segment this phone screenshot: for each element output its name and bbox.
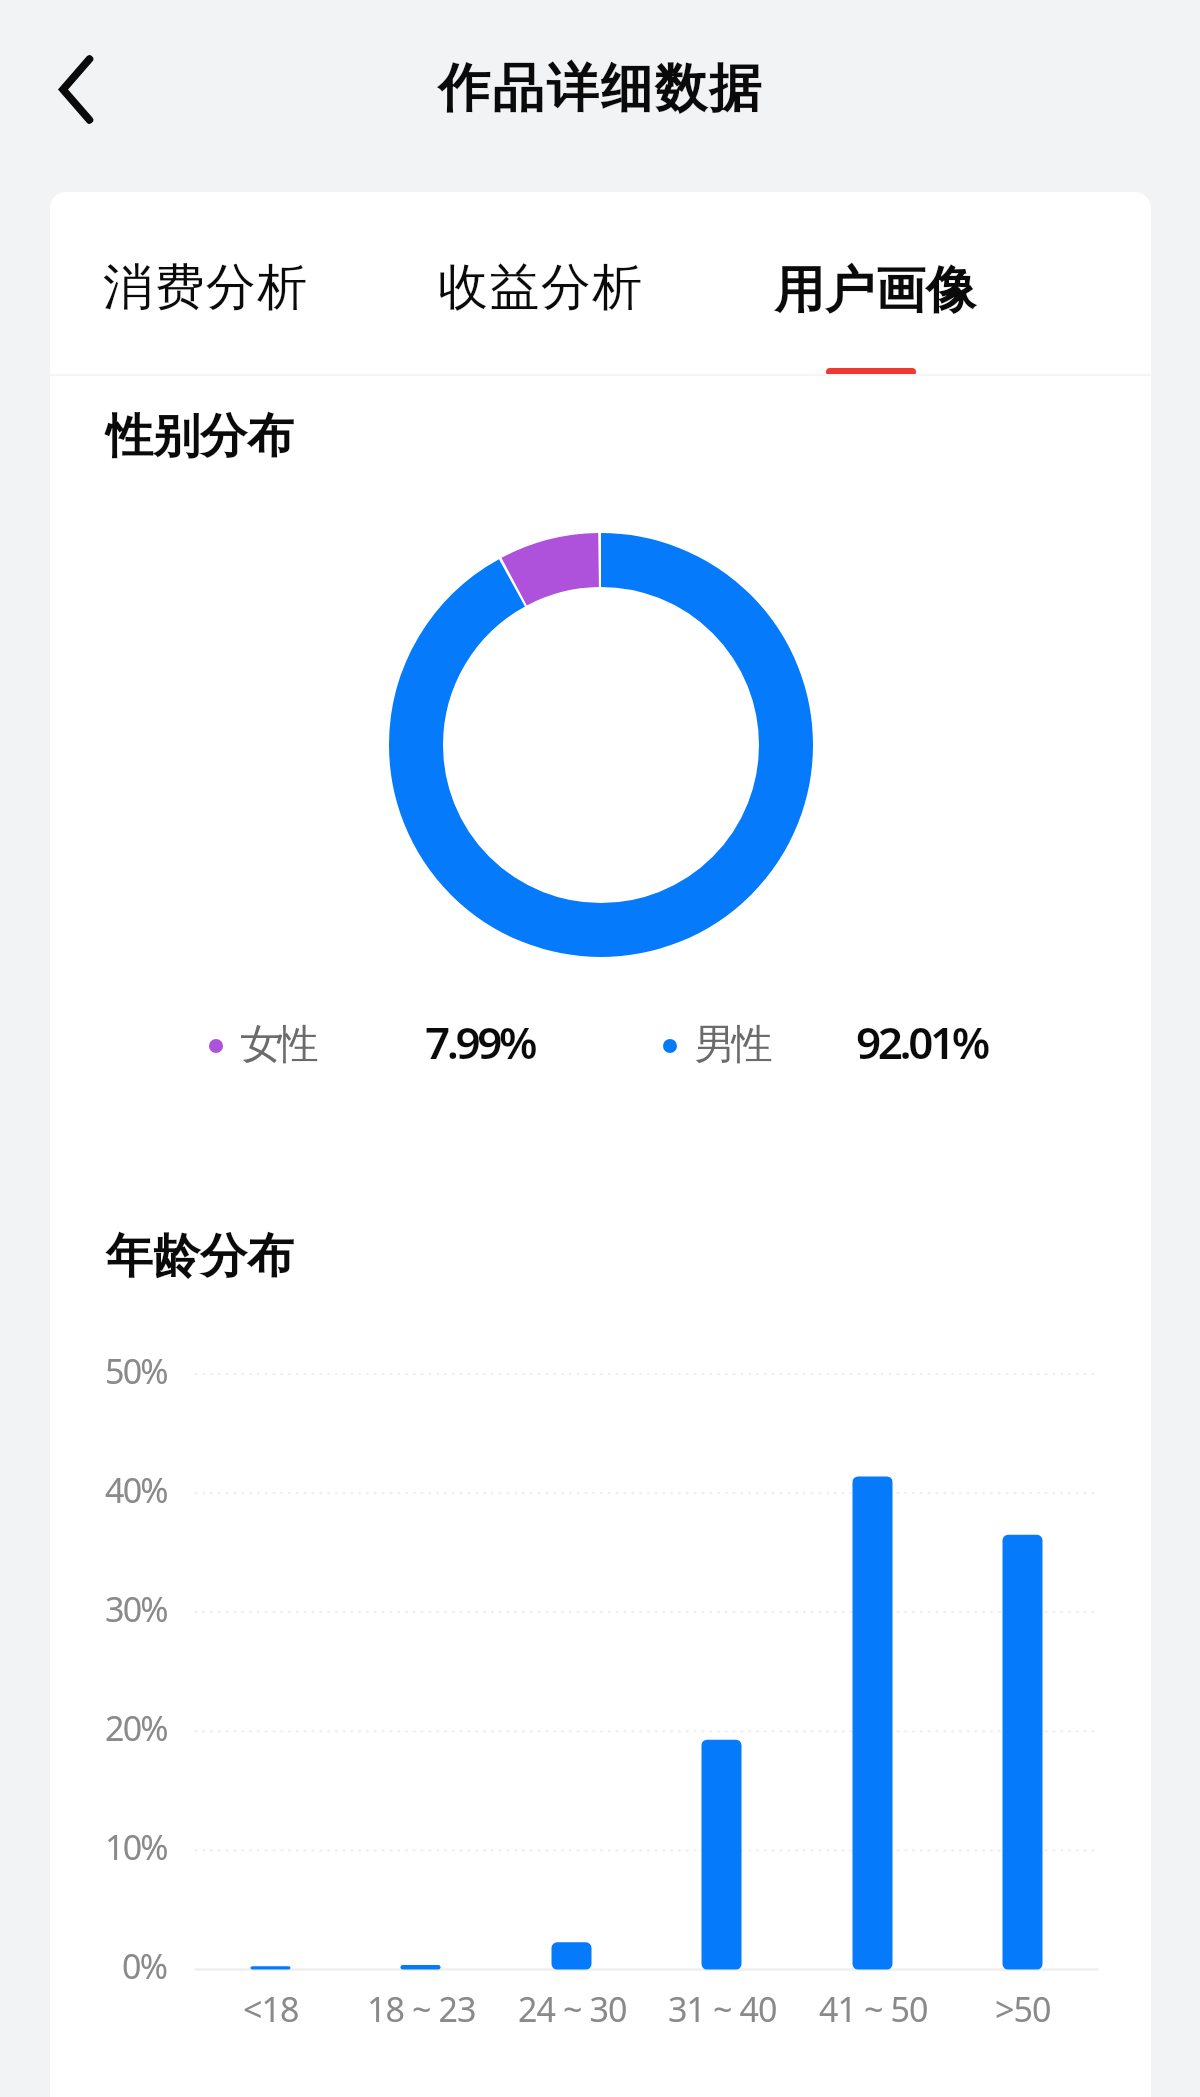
staticText: 消费分析 [103,256,309,319]
staticText: >50 [995,1986,1051,2032]
button[interactable]: Back [29,38,129,138]
staticText: 用户画像 [774,259,976,322]
staticText: 0% [122,1943,167,1989]
staticText: 30% [105,1586,167,1632]
staticText: 男性 [696,1019,771,1071]
staticText: <18 [243,1986,299,2032]
button[interactable]: 收益分析 [438,192,724,374]
staticText: 20% [105,1705,167,1751]
staticText: 10% [105,1824,167,1870]
staticText: 40% [105,1467,167,1513]
button[interactable]: 消费分析 [103,192,389,374]
staticText: 作品详细数据 [438,56,764,122]
staticText: 18 ~ 23 [367,1986,476,2032]
button[interactable]: 用户画像 [774,192,1060,374]
staticText: 7.99% [425,1012,535,1072]
staticText: 31 ~ 40 [668,1986,777,2032]
staticText: 性别分布 [106,407,294,466]
staticText: 24 ~ 30 [518,1986,627,2032]
staticText: 50% [105,1348,167,1394]
staticText: 女性 [242,1019,317,1071]
staticText: 41 ~ 50 [819,1986,928,2032]
staticText: 92.01% [856,1012,987,1072]
staticText: 收益分析 [438,256,644,319]
staticText: 年龄分布 [106,1227,294,1286]
